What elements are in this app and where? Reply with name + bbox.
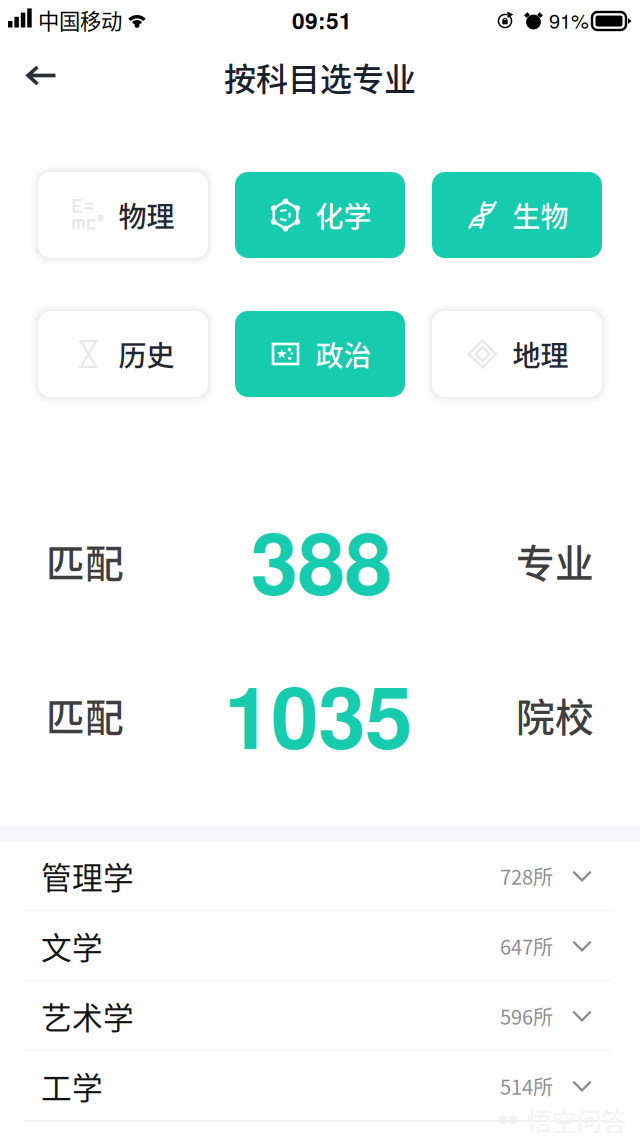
staticText: 388 bbox=[250, 499, 391, 621]
staticText: 生物 bbox=[512, 195, 568, 235]
staticText: 514所 bbox=[500, 1071, 553, 1100]
staticText: 物理 bbox=[118, 195, 174, 235]
staticText: 1035 bbox=[224, 653, 412, 775]
staticText: 院校 bbox=[516, 687, 594, 743]
button[interactable]: 物理 bbox=[28, 163, 218, 267]
staticText: 728所 bbox=[500, 861, 553, 890]
button[interactable]: 化学 bbox=[225, 163, 415, 267]
button[interactable]: 文学 bbox=[0, 911, 640, 981]
staticText: 悟空问答 bbox=[526, 1102, 626, 1138]
staticText: 09:51 bbox=[292, 4, 352, 36]
staticText: 中国移动 bbox=[38, 5, 122, 35]
staticText: 专业 bbox=[516, 533, 594, 589]
button[interactable]: 生物 bbox=[422, 163, 612, 267]
button[interactable]: Back bbox=[6, 45, 78, 106]
staticText: 工学 bbox=[41, 1064, 103, 1108]
button[interactable]: 政治 bbox=[225, 302, 415, 406]
staticText: 政治 bbox=[315, 334, 371, 374]
staticText: 文学 bbox=[41, 924, 103, 968]
staticText: 化学 bbox=[315, 195, 371, 235]
button[interactable]: 管理学 bbox=[0, 841, 640, 911]
button[interactable]: 艺术学 bbox=[0, 981, 640, 1051]
button[interactable]: 地理 bbox=[422, 302, 612, 406]
staticText: 艺术学 bbox=[41, 994, 134, 1038]
staticText: 596所 bbox=[500, 1001, 553, 1030]
staticText: 管理学 bbox=[41, 854, 134, 898]
staticText: 地理 bbox=[512, 334, 568, 374]
button[interactable]: 历史 bbox=[28, 302, 218, 406]
staticText: 647所 bbox=[500, 931, 553, 960]
staticText: 历史 bbox=[118, 334, 174, 374]
button[interactable]: 工学 bbox=[0, 1051, 640, 1121]
staticText: 91% bbox=[549, 6, 589, 34]
staticText: 匹配 bbox=[46, 687, 124, 743]
staticText: 匹配 bbox=[46, 533, 124, 589]
staticText: 按科目选专业 bbox=[224, 54, 416, 100]
